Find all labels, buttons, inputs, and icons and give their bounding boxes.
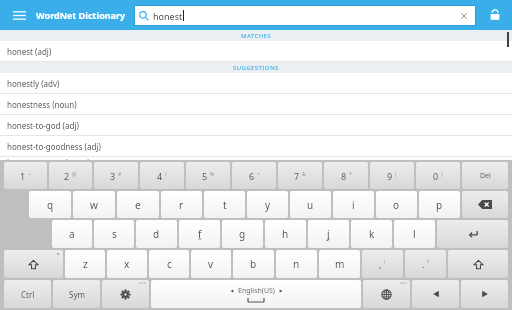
button[interactable]: Move cursor right [461, 280, 508, 308]
staticText: s [112, 227, 117, 241]
button[interactable]: l [394, 220, 435, 248]
other: Shift [448, 250, 508, 278]
button[interactable]: p [419, 191, 460, 218]
button[interactable]: Del [462, 162, 508, 189]
button[interactable]: Lock [482, 2, 508, 28]
staticText: honest woman (noun) [7, 157, 90, 160]
staticText: n [293, 257, 300, 271]
staticText: honestness (noun) [7, 99, 77, 110]
staticText: 8 [341, 170, 347, 182]
staticText: h [282, 227, 289, 241]
button[interactable]: y [247, 191, 288, 218]
staticText: honest-to-goodness (adj) [7, 141, 101, 152]
button[interactable]: s [94, 220, 134, 248]
staticText: b [250, 257, 257, 271]
button[interactable]: Enter [437, 220, 508, 248]
button[interactable]: n [276, 250, 317, 278]
button[interactable]: Ctrl [4, 280, 51, 308]
staticText: o [393, 198, 400, 212]
button[interactable]: 7 [278, 162, 322, 189]
button[interactable]: Clear search [457, 9, 471, 23]
button[interactable]: . [405, 250, 446, 278]
staticText: * [349, 171, 352, 178]
button[interactable]: Keyboard settings [102, 280, 149, 308]
button[interactable]: honest (adj) [0, 41, 512, 62]
button[interactable]: h [265, 220, 306, 248]
button[interactable]: Backspace [462, 191, 508, 218]
staticText: Ctrl [21, 289, 35, 300]
button[interactable]: Shift [4, 250, 63, 278]
button[interactable]: English(US) [151, 280, 361, 308]
staticText: 5 [202, 170, 208, 182]
other: Keyboard settings [102, 280, 149, 308]
staticText: ^ [257, 171, 260, 178]
button[interactable]: 1 [4, 162, 47, 189]
button[interactable]: a [52, 220, 92, 248]
staticText: 3 [110, 170, 116, 182]
staticText: 9 [387, 170, 393, 182]
staticText: ! [384, 259, 386, 266]
button[interactable]: honest [134, 5, 476, 26]
button[interactable]: Move cursor left [412, 280, 459, 308]
staticText: z [83, 257, 88, 271]
staticText: 6 [249, 170, 255, 182]
button[interactable]: d [136, 220, 177, 248]
button[interactable]: 4 [140, 162, 184, 189]
staticText: x [124, 257, 130, 271]
button[interactable]: k [351, 220, 392, 248]
button[interactable]: z [65, 250, 105, 278]
button[interactable]: u [290, 191, 331, 218]
staticText: SUGGESTIONS [233, 64, 279, 72]
button[interactable]: Sym [53, 280, 100, 308]
staticText: 2 [64, 170, 70, 182]
staticText: e [135, 198, 141, 212]
button[interactable]: o [376, 191, 417, 218]
button[interactable]: , [362, 250, 403, 278]
staticText: k [369, 227, 375, 241]
button[interactable]: 6 [232, 162, 276, 189]
button[interactable]: b [233, 250, 274, 278]
staticText: ~ [28, 171, 31, 178]
button[interactable]: q [29, 191, 71, 218]
button[interactable]: 9 [370, 162, 414, 189]
button[interactable]: honest woman (noun) [0, 157, 512, 160]
button[interactable]: 3 [94, 162, 138, 189]
button[interactable]: g [222, 220, 263, 248]
staticText: ? [427, 259, 430, 266]
button[interactable]: Open navigation drawer [6, 2, 32, 28]
button[interactable]: w [73, 191, 115, 218]
button[interactable]: j [308, 220, 349, 248]
button[interactable]: 8 [324, 162, 368, 189]
button[interactable]: Shift [448, 250, 508, 278]
button[interactable]: honestly (adv) [0, 73, 512, 94]
button[interactable]: e [117, 191, 159, 218]
staticText: honest-to-god (adj) [7, 120, 79, 131]
button[interactable]: r [161, 191, 202, 218]
button[interactable]: 2 [49, 162, 92, 189]
button[interactable]: m [319, 250, 360, 278]
button[interactable]: 0 [416, 162, 460, 189]
staticText: honest [153, 10, 183, 22]
staticText: 4 [157, 170, 163, 182]
staticText: q [47, 198, 54, 212]
staticText: honest (adj) [7, 46, 52, 57]
staticText: 1 [20, 170, 26, 182]
button[interactable]: i [333, 191, 374, 218]
button[interactable]: v [191, 250, 231, 278]
button[interactable]: x [107, 250, 147, 278]
button[interactable]: Change language [363, 280, 410, 308]
button[interactable]: f [179, 220, 220, 248]
button[interactable]: 5 [186, 162, 230, 189]
staticText: j [327, 227, 330, 241]
staticText: m [335, 257, 345, 271]
staticText: honestly (adv) [7, 78, 60, 89]
button[interactable]: c [149, 250, 189, 278]
staticText: English(US) [238, 286, 275, 296]
button[interactable]: t [204, 191, 245, 218]
button[interactable]: honest-to-goodness (adj) [0, 136, 512, 157]
other: Move cursor right [461, 280, 508, 308]
staticText: u [307, 198, 314, 212]
button[interactable]: honestness (noun) [0, 94, 512, 115]
other: Backspace [462, 191, 508, 218]
button[interactable]: honest-to-god (adj) [0, 115, 512, 136]
